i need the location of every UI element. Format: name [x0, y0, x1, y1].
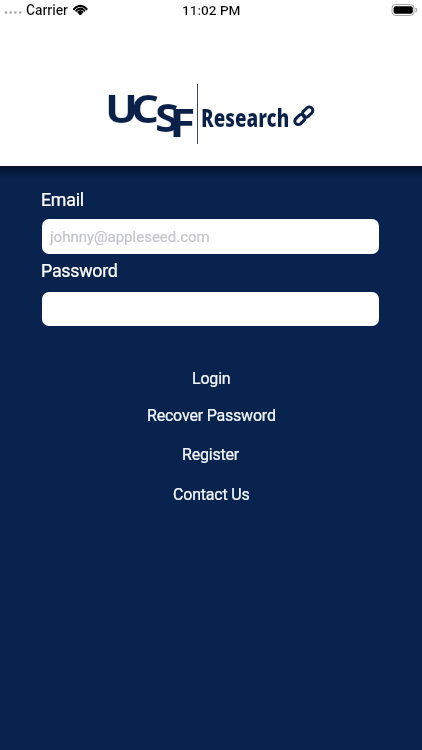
staticText: Login: [192, 369, 231, 388]
staticText: Register: [182, 445, 240, 464]
staticText: C: [131, 81, 160, 134]
button[interactable]: Login: [192, 369, 231, 388]
button[interactable]: Contact Us: [173, 485, 250, 504]
staticText: Email: [41, 189, 84, 210]
staticText: U: [105, 81, 139, 134]
button[interactable]: Register: [182, 445, 240, 464]
staticText: johnny@appleseed.com: [50, 228, 210, 246]
button[interactable]: johnny@appleseed.com: [42, 219, 379, 254]
staticText: Carrier: [26, 2, 68, 18]
staticText: Research: [201, 101, 290, 134]
staticText: Password: [41, 260, 118, 281]
staticText: Contact Us: [173, 485, 250, 504]
button[interactable]: [42, 292, 379, 326]
staticText: 11:02 PM: [182, 2, 241, 18]
staticText: S: [155, 90, 180, 143]
button[interactable]: Recover Password: [147, 406, 276, 425]
staticText: F: [169, 95, 196, 148]
staticText: Recover Password: [147, 406, 276, 425]
